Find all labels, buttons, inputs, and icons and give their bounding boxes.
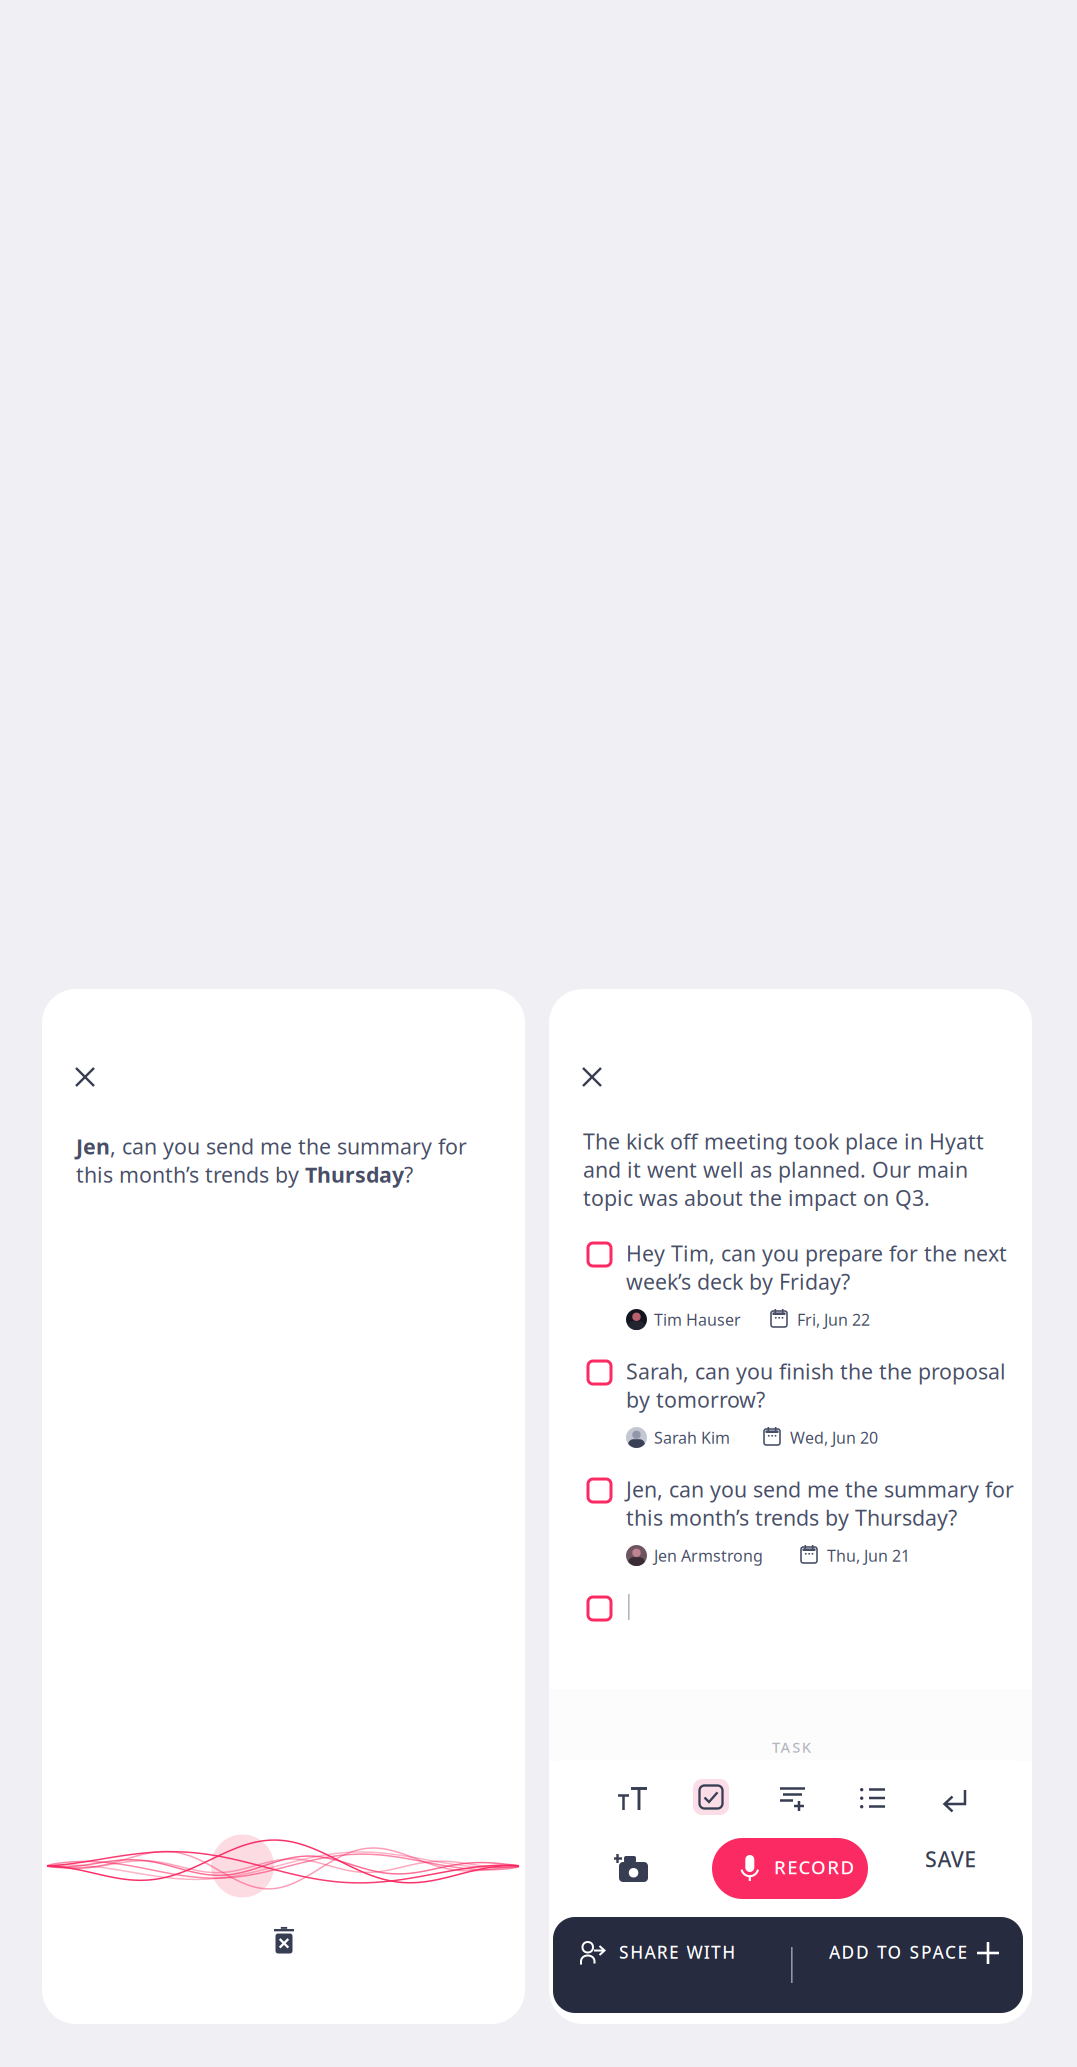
button[interactable]: Task (693, 1779, 729, 1815)
staticText: Sarah, can you finish the the proposal b… (626, 1357, 1006, 1414)
staticText: The kick off meeting took place in Hyatt… (583, 1127, 984, 1212)
button[interactable]: Close (570, 1055, 614, 1099)
staticText: TASK (772, 1737, 811, 1757)
button[interactable]: ADD TO SPACE (829, 1942, 1001, 1966)
button[interactable]: Bullet list (850, 1778, 896, 1819)
button[interactable]: Return (932, 1780, 977, 1823)
staticText: Hey Tim, can you prepare for the next we… (626, 1239, 1007, 1296)
staticText: ADD TO SPACE (829, 1940, 967, 1963)
staticText: Sarah Kim (654, 1427, 730, 1448)
button[interactable]: SAVE (925, 1842, 989, 1876)
button[interactable]: RECORD (712, 1838, 868, 1899)
button[interactable]: Add item (770, 1777, 816, 1822)
staticText: Jen, can you send me the summary for thi… (626, 1475, 1014, 1532)
staticText: Jen, can you send me the summary for thi… (76, 1132, 467, 1189)
staticText: Thu, Jun 21 (827, 1545, 910, 1566)
staticText: SHARE WITH (619, 1940, 735, 1963)
staticText: Wed, Jun 20 (790, 1427, 878, 1448)
button[interactable]: Close (63, 1055, 107, 1099)
staticText: RECORD (774, 1855, 854, 1879)
button[interactable]: Add photo (604, 1844, 658, 1892)
button[interactable]: Delete recording (263, 1916, 305, 1965)
staticText: Fri, Jun 22 (797, 1309, 870, 1330)
button[interactable]: Text format (608, 1777, 657, 1821)
staticText: Tim Hauser (654, 1309, 741, 1330)
button[interactable]: SHARE WITH (581, 1942, 761, 1966)
staticText: SAVE (925, 1845, 976, 1873)
staticText: Jen Armstrong (654, 1545, 763, 1566)
